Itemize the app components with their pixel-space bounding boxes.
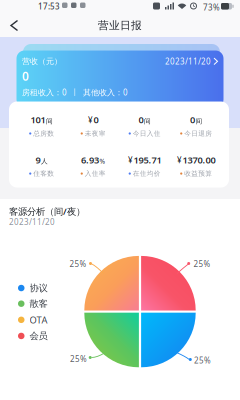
staticText: 间 — [144, 117, 151, 125]
staticText: % — [99, 157, 105, 165]
staticText: ¥ — [177, 155, 182, 165]
staticText: 25% — [193, 258, 210, 269]
staticText: 营收（元） — [22, 56, 62, 66]
staticText: 9 — [35, 154, 40, 166]
staticText: 会员 — [29, 330, 47, 342]
staticText: 73% — [203, 2, 220, 13]
staticText: 0 — [22, 68, 29, 84]
button[interactable]: 返回 — [0, 14, 17, 37]
staticText: 2023/11/20 — [9, 216, 55, 227]
staticText: 总房数 — [33, 129, 54, 138]
staticText: 0 — [138, 113, 143, 126]
staticText: 协议 — [29, 282, 47, 294]
staticText: 2023/11/20 — [165, 56, 211, 67]
staticText: 今日退房 — [184, 129, 212, 138]
staticText: 25% — [70, 353, 87, 364]
staticText: 丨 — [67, 87, 83, 97]
staticText: ¥ — [88, 115, 93, 125]
staticText: 今日入住 — [133, 129, 161, 138]
button[interactable]: 营收（元） — [16, 50, 223, 107]
staticText: 住客数 — [33, 169, 54, 178]
staticText: 间 — [46, 117, 53, 125]
staticText: 人 — [41, 157, 48, 165]
staticText: 101 — [30, 113, 45, 126]
staticText: 25% — [69, 258, 86, 269]
staticText: 营业日报 — [98, 19, 142, 32]
staticText: 房租收入：0 — [22, 87, 67, 98]
staticText: 其他收入：0 — [83, 87, 128, 98]
staticText: 0 — [93, 113, 98, 126]
staticText: ¥ — [128, 155, 133, 165]
staticText: 195.71 — [133, 154, 161, 166]
staticText: 1370.00 — [182, 154, 215, 166]
staticText: 未夜审 — [85, 129, 106, 138]
staticText: 0 — [190, 113, 195, 126]
staticText: OTA — [29, 314, 47, 326]
staticText: 17:53 — [38, 1, 60, 12]
staticText: 散客 — [29, 298, 47, 309]
staticText: 间 — [195, 117, 202, 125]
staticText: 入住率 — [85, 169, 106, 178]
staticText: 25% — [194, 355, 211, 366]
staticText: 在住均价 — [133, 169, 161, 178]
staticText: 收益预算 — [184, 169, 212, 178]
staticText: 6.93 — [81, 154, 99, 166]
staticText: 客源分析（间/夜） — [9, 205, 85, 217]
